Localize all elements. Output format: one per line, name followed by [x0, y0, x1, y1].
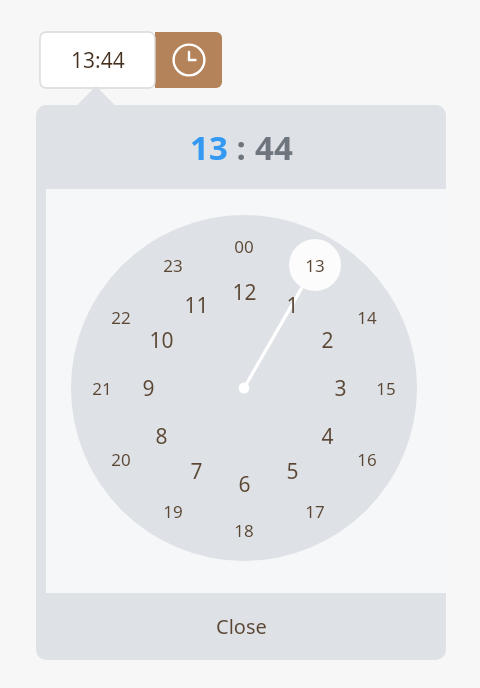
button[interactable]: 11: [174, 290, 218, 320]
staticText: 17: [305, 500, 325, 523]
staticText: 7: [190, 457, 203, 486]
button[interactable]: 19: [151, 496, 195, 526]
staticText: 16: [357, 448, 377, 471]
staticText: 14: [357, 306, 377, 329]
staticText: 22: [111, 306, 131, 329]
staticText: :: [228, 125, 255, 170]
button[interactable]: 20: [99, 444, 143, 474]
button[interactable]: 6: [222, 469, 266, 499]
button[interactable]: 23: [151, 250, 195, 280]
staticText: 1: [286, 291, 299, 320]
staticText: 9: [142, 374, 155, 403]
button[interactable]: 22: [99, 302, 143, 332]
button[interactable]: 13: [190, 125, 228, 170]
staticText: 15: [376, 377, 396, 400]
staticText: 20: [111, 448, 131, 471]
button[interactable]: 44: [255, 125, 293, 170]
button[interactable]: Close: [36, 593, 446, 660]
staticText: 6: [238, 470, 251, 499]
staticText: 12: [232, 278, 257, 307]
button[interactable]: 12: [222, 277, 266, 307]
staticText: Close: [216, 613, 267, 640]
staticText: 4: [321, 422, 334, 451]
button[interactable]: 00: [222, 231, 266, 261]
button[interactable]: 18: [222, 515, 266, 545]
staticText: 3: [334, 374, 347, 403]
button[interactable]: 8: [139, 421, 183, 451]
staticText: 19: [163, 500, 183, 523]
staticText: 13:44: [71, 46, 125, 75]
button[interactable]: 9: [126, 373, 170, 403]
button[interactable]: 14: [345, 302, 389, 332]
button[interactable]: 2: [305, 325, 349, 355]
staticText: 5: [286, 457, 299, 486]
staticText: 00: [234, 235, 254, 258]
staticText: 18: [234, 519, 254, 542]
button[interactable]: 13: [293, 250, 337, 280]
staticText: 21: [92, 377, 112, 400]
staticText: 10: [149, 326, 174, 355]
staticText: 2: [321, 326, 334, 355]
button[interactable]: 5: [270, 456, 314, 486]
button[interactable]: 15: [364, 373, 408, 403]
button[interactable]: 4: [305, 421, 349, 451]
button[interactable]: 10: [139, 325, 183, 355]
button[interactable]: 3: [318, 373, 362, 403]
button[interactable]: 1: [270, 290, 314, 320]
button[interactable]: 17: [293, 496, 337, 526]
button[interactable]: 16: [345, 444, 389, 474]
staticText: 23: [163, 254, 183, 277]
button[interactable]: Open time picker: [155, 32, 222, 88]
button[interactable]: 7: [174, 456, 218, 486]
staticText: 13: [305, 254, 325, 277]
button[interactable]: 13:44: [40, 32, 155, 88]
button[interactable]: 21: [80, 373, 124, 403]
staticText: 8: [155, 422, 168, 451]
staticText: 11: [184, 291, 209, 320]
